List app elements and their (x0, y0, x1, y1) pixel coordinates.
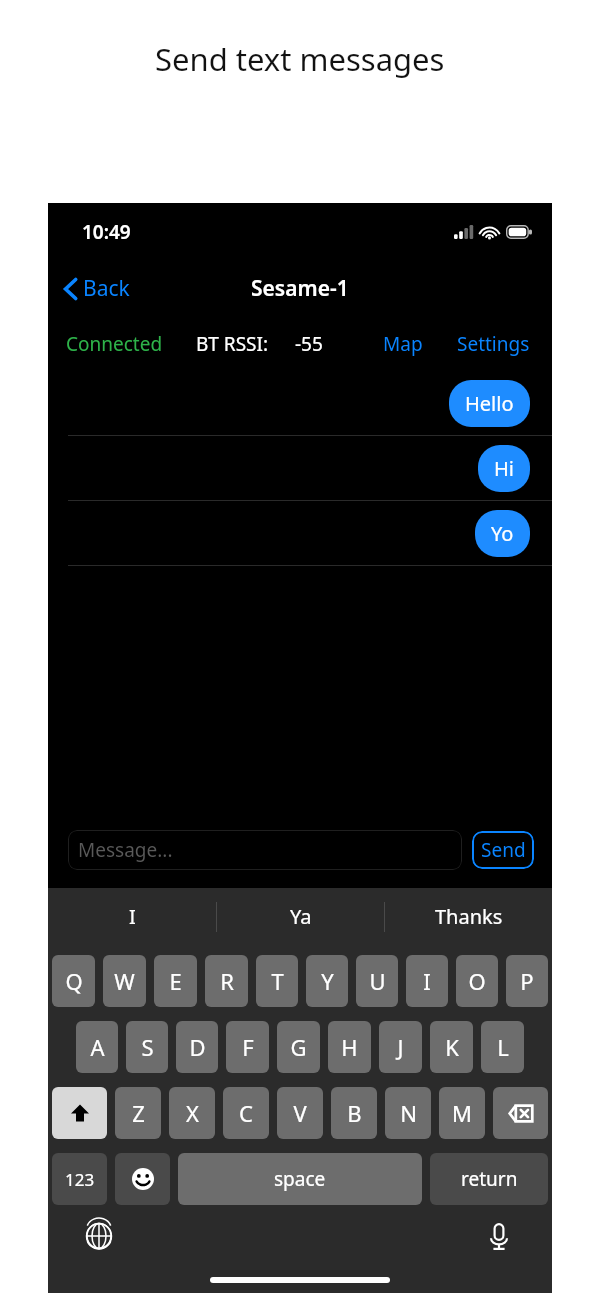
button[interactable]: I (48, 888, 216, 945)
staticText: I (423, 966, 431, 996)
staticText: X (186, 1098, 199, 1128)
staticText: A (90, 1032, 105, 1062)
button[interactable]: J (379, 1021, 422, 1073)
button[interactable]: Ya (217, 888, 384, 945)
staticText: E (169, 966, 182, 996)
button[interactable]: Z (115, 1087, 161, 1139)
button[interactable]: Q (52, 955, 95, 1007)
button[interactable]: Settings (453, 325, 534, 363)
staticText: space (274, 1166, 326, 1192)
staticText: Send text messages (155, 38, 445, 80)
button[interactable]: Shift (52, 1087, 107, 1139)
staticText: I (129, 903, 136, 930)
button[interactable]: R (205, 955, 248, 1007)
staticText: Send (481, 837, 526, 863)
button[interactable]: Y (306, 955, 348, 1007)
staticText: V (293, 1098, 307, 1128)
staticText: B (347, 1098, 362, 1128)
staticText: Message... (78, 837, 173, 863)
staticText: Settings (457, 331, 530, 357)
staticText: Map (383, 331, 423, 357)
staticText: C (239, 1098, 253, 1128)
staticText: P (520, 966, 534, 996)
staticText: N (400, 1098, 417, 1128)
button[interactable]: E (154, 955, 197, 1007)
staticText: H (341, 1032, 358, 1062)
button[interactable]: X (169, 1087, 215, 1139)
button[interactable]: U (356, 955, 398, 1007)
button[interactable]: Switch keyboard (78, 1215, 120, 1257)
button[interactable]: T (256, 955, 298, 1007)
button[interactable]: space (178, 1153, 422, 1205)
staticText: BT RSSI: (196, 331, 269, 357)
button[interactable]: B (331, 1087, 377, 1139)
button[interactable]: H (328, 1021, 371, 1073)
staticText: K (445, 1032, 459, 1062)
staticText: Q (65, 966, 83, 996)
button[interactable]: L (481, 1021, 524, 1073)
staticText: F (242, 1032, 254, 1062)
staticText: U (369, 966, 386, 996)
button[interactable]: Thanks (385, 888, 552, 945)
staticText: T (271, 966, 284, 996)
button[interactable]: return (430, 1153, 548, 1205)
staticText: Sesame-1 (251, 274, 349, 303)
staticText: -55 (295, 331, 323, 357)
button[interactable]: K (430, 1021, 473, 1073)
staticText: Z (132, 1098, 145, 1128)
button[interactable]: Message... (68, 830, 462, 870)
staticText: Connected (66, 331, 163, 357)
staticText: M (452, 1098, 472, 1128)
button[interactable]: Send (472, 831, 534, 869)
button[interactable]: A (76, 1021, 118, 1073)
staticText: Hello (465, 390, 514, 417)
staticText: D (189, 1032, 206, 1062)
staticText: W (114, 966, 135, 996)
button[interactable]: Emoji (115, 1153, 170, 1205)
staticText: 123 (65, 1168, 95, 1191)
button[interactable]: Hi (48, 436, 552, 500)
staticText: 10:49 (82, 219, 131, 245)
button[interactable]: S (126, 1021, 168, 1073)
button[interactable]: Dictation (478, 1215, 520, 1257)
staticText: Hi (494, 455, 514, 482)
staticText: O (468, 966, 486, 996)
button[interactable]: Yo (48, 501, 552, 565)
staticText: G (290, 1032, 307, 1062)
button[interactable]: Hello (48, 371, 552, 435)
staticText: J (397, 1032, 404, 1062)
button[interactable]: V (277, 1087, 323, 1139)
staticText: Back (83, 274, 130, 303)
button[interactable]: O (456, 955, 498, 1007)
staticText: R (220, 966, 234, 996)
button[interactable]: 123 (52, 1153, 107, 1205)
staticText: Thanks (435, 903, 503, 930)
button[interactable]: C (223, 1087, 269, 1139)
button[interactable]: Backspace (493, 1087, 548, 1139)
button[interactable]: F (226, 1021, 269, 1073)
button[interactable]: P (506, 955, 548, 1007)
staticText: L (497, 1032, 509, 1062)
staticText: return (461, 1166, 518, 1192)
staticText: S (141, 1032, 154, 1062)
button[interactable]: G (277, 1021, 320, 1073)
button[interactable]: Back (48, 268, 142, 309)
button[interactable]: D (176, 1021, 218, 1073)
button[interactable]: M (439, 1087, 485, 1139)
staticText: Ya (290, 903, 312, 930)
button[interactable]: W (103, 955, 146, 1007)
button[interactable]: Map (377, 325, 429, 363)
button[interactable]: I (406, 955, 448, 1007)
staticText: Y (321, 966, 334, 996)
button[interactable]: N (385, 1087, 431, 1139)
staticText: Yo (491, 520, 514, 547)
